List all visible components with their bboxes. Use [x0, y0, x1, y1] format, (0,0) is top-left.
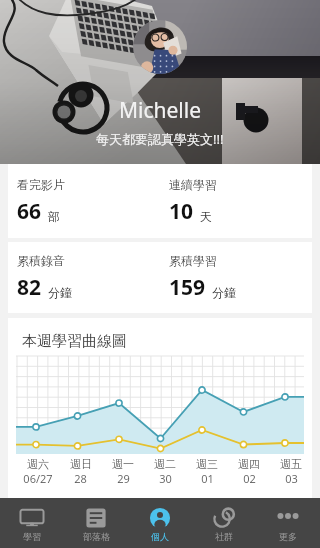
staticText: Michelle: [119, 96, 202, 125]
staticText: 28: [74, 471, 87, 486]
staticText: 週六: [27, 457, 49, 471]
button[interactable]: 社群: [192, 498, 256, 548]
staticText: 03: [285, 471, 298, 486]
staticText: 週五: [280, 457, 302, 471]
button[interactable]: 學習: [0, 498, 64, 548]
staticText: 看完影片: [17, 177, 65, 192]
staticText: 連續學習: [169, 177, 217, 192]
staticText: 82: [17, 273, 42, 302]
staticText: 週一: [112, 457, 134, 471]
button[interactable]: 累積學習: [160, 242, 312, 313]
button[interactable]: 看完影片: [8, 164, 160, 238]
staticText: 週四: [238, 457, 260, 471]
staticText: 每天都要認真學英文!!!: [96, 130, 224, 148]
staticText: 10: [169, 197, 194, 226]
staticText: 29: [117, 471, 130, 486]
button[interactable]: 更多: [256, 498, 320, 548]
staticText: 66: [17, 197, 42, 226]
staticText: 159: [169, 273, 206, 302]
staticText: 部: [48, 209, 60, 224]
staticText: 天: [200, 209, 212, 224]
staticText: 社群: [215, 531, 233, 542]
staticText: 本週學習曲線圖: [22, 332, 127, 351]
button[interactable]: 部落格: [64, 498, 128, 548]
staticText: 累積錄音: [17, 253, 65, 268]
staticText: 週二: [154, 457, 176, 471]
staticText: 01: [201, 471, 214, 486]
staticText: 週日: [70, 457, 92, 471]
staticText: 學習: [23, 531, 41, 542]
staticText: 分鐘: [48, 285, 72, 300]
button[interactable]: 連續學習: [160, 164, 312, 238]
staticText: 更多: [279, 531, 297, 542]
staticText: 週三: [196, 457, 218, 471]
staticText: 個人: [151, 531, 169, 542]
staticText: 02: [243, 471, 256, 486]
staticText: 30: [159, 471, 172, 486]
button[interactable]: 累積錄音: [8, 242, 160, 313]
staticText: 06/27: [23, 471, 53, 486]
staticText: 累積學習: [169, 253, 217, 268]
staticText: 部落格: [83, 531, 110, 542]
button[interactable]: 個人: [128, 498, 192, 548]
button[interactable]: Profile photo: [133, 20, 187, 74]
staticText: 分鐘: [212, 285, 236, 300]
